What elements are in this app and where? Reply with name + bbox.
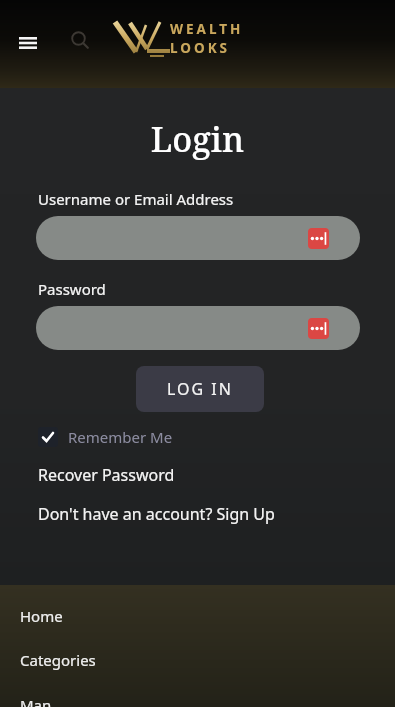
button[interactable]: Recover Password — [38, 464, 175, 486]
button[interactable] — [36, 306, 360, 350]
button[interactable]: Remember Me — [38, 427, 173, 447]
staticText: LOOKS — [170, 39, 231, 57]
button[interactable] — [36, 216, 360, 260]
button[interactable]: Don't have an account? Sign Up — [38, 503, 275, 525]
button[interactable]: WEALTH — [108, 18, 258, 64]
staticText: Categories — [20, 650, 96, 670]
button[interactable]: Categories — [0, 650, 395, 674]
button[interactable] — [12, 29, 44, 56]
staticText: Remember Me — [68, 427, 173, 447]
staticText: Password — [38, 279, 106, 299]
button[interactable]: Man — [0, 695, 395, 707]
staticText: LOG IN — [167, 378, 233, 400]
staticText: Login — [0, 116, 395, 162]
staticText: Man — [20, 695, 52, 707]
staticText: Home — [20, 606, 63, 626]
staticText: Username or Email Address — [38, 189, 234, 209]
button[interactable]: LOG IN — [136, 366, 264, 412]
staticText: WEALTH — [170, 20, 244, 38]
button[interactable] — [66, 26, 94, 54]
button[interactable]: Home — [0, 606, 395, 630]
